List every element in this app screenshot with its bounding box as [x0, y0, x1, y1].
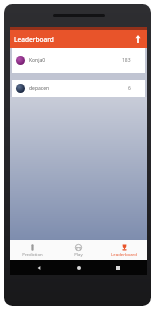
button[interactable]: Konja0 [12, 48, 145, 73]
staticText: Prediction [22, 251, 43, 257]
button[interactable]: Home [77, 266, 81, 270]
button[interactable]: Play [55, 240, 101, 260]
staticText: Konja0 [29, 57, 122, 64]
staticText: Leaderboard [14, 35, 129, 44]
staticText: 183 [122, 57, 131, 64]
button[interactable]: Prediction [10, 240, 55, 260]
button[interactable]: Scroll to top [129, 30, 147, 48]
staticText: Play [74, 251, 83, 257]
staticText: Leaderboard [111, 251, 137, 257]
staticText: depacen [29, 85, 128, 92]
button[interactable]: Back [37, 266, 41, 270]
staticText: 6 [128, 85, 131, 92]
button[interactable]: Leaderboard [101, 240, 147, 260]
button[interactable]: depacen [12, 80, 145, 97]
